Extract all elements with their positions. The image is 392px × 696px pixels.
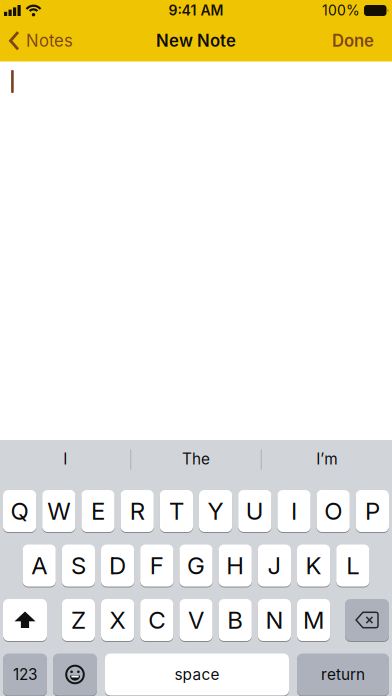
button[interactable]: E [81, 489, 115, 532]
button[interactable]: Done [332, 31, 374, 51]
button[interactable]: F [140, 544, 173, 587]
staticText: S [71, 551, 86, 580]
button[interactable]: D [101, 544, 134, 587]
button[interactable]: W [42, 489, 75, 532]
staticText: A [31, 551, 47, 580]
staticText: M [303, 605, 324, 634]
button[interactable]: I’m [267, 440, 387, 478]
button[interactable]: M [297, 598, 330, 641]
staticText: T [169, 496, 184, 525]
button[interactable]: A [23, 544, 56, 587]
button[interactable]: J [258, 544, 291, 587]
staticText: O [324, 496, 342, 525]
staticText: I [63, 450, 67, 468]
staticText: J [267, 551, 281, 580]
staticText: space [174, 665, 219, 684]
staticText: I [291, 496, 297, 525]
button[interactable]: L [336, 544, 369, 587]
staticText: G [187, 551, 205, 580]
staticText: Notes [26, 31, 73, 51]
staticText: I’m [316, 450, 337, 468]
button[interactable]: B [219, 598, 252, 641]
button[interactable]: C [140, 598, 173, 641]
staticText: D [109, 551, 126, 580]
button[interactable]: T [160, 489, 193, 532]
staticText: B [227, 605, 243, 634]
staticText: U [246, 496, 264, 525]
button[interactable]: S [62, 544, 95, 587]
staticText: V [188, 605, 204, 634]
button[interactable]: O [317, 489, 350, 532]
staticText: P [365, 496, 380, 525]
staticText: The [182, 450, 210, 468]
button[interactable]: U [238, 489, 271, 532]
staticText: C [148, 605, 165, 634]
button[interactable]: The [136, 440, 256, 478]
staticText: Z [71, 605, 86, 634]
staticText: 123 [13, 665, 37, 684]
button[interactable]: Q [3, 489, 36, 532]
button[interactable]: I [277, 489, 311, 532]
staticText: N [265, 605, 283, 634]
staticText: Q [11, 496, 29, 525]
button[interactable]: Delete [345, 598, 389, 641]
button[interactable]: G [179, 544, 213, 587]
button[interactable]: R [121, 489, 154, 532]
staticText: 9:41 AM [168, 2, 223, 19]
button[interactable]: Emoji [53, 653, 97, 696]
button[interactable]: X [101, 598, 134, 641]
button[interactable]: Y [199, 489, 232, 532]
staticText: F [150, 551, 164, 580]
button[interactable]: Numbers [3, 653, 47, 696]
button[interactable]: H [219, 544, 252, 587]
staticText: 100% [322, 2, 360, 19]
staticText: X [110, 605, 126, 634]
button[interactable]: K [297, 544, 330, 587]
staticText: L [346, 551, 359, 580]
staticText: R [130, 496, 145, 525]
button[interactable]: N [258, 598, 291, 641]
staticText: New Note [156, 31, 236, 51]
button[interactable]: V [179, 598, 213, 641]
staticText: return [321, 665, 365, 684]
staticText: Done [332, 31, 374, 51]
button[interactable]: Z [62, 598, 95, 641]
button[interactable]: return [297, 653, 389, 696]
button[interactable]: I [5, 440, 125, 478]
button[interactable]: P [356, 489, 389, 532]
staticText: W [47, 496, 70, 525]
staticText: H [226, 551, 244, 580]
staticText: Y [208, 496, 224, 525]
staticText: K [306, 551, 322, 580]
button[interactable]: Shift [3, 598, 47, 641]
button[interactable]: space [105, 653, 289, 696]
button[interactable]: Back to Notes [9, 31, 73, 51]
staticText: E [91, 496, 105, 525]
